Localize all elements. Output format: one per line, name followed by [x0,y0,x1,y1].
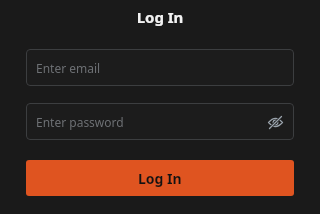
button[interactable]: Log In [26,160,294,196]
button[interactable]: Show password [264,111,286,133]
button[interactable]: Enter password [26,103,294,140]
staticText: Log In [138,169,182,188]
staticText: Log In [0,7,320,27]
button[interactable]: Enter email [26,49,294,86]
staticText: Enter email [36,60,101,76]
staticText: Enter password [36,114,124,130]
